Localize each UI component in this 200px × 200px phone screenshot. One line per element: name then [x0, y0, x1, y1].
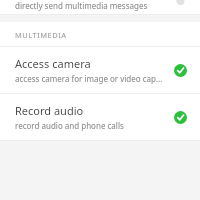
button[interactable]: directly send multimedia messages — [0, 0, 200, 11]
staticText: record audio and phone calls — [15, 120, 124, 131]
button[interactable]: Send multimedia messages denied — [168, 0, 192, 8]
button[interactable]: Record audio — [0, 94, 200, 140]
button[interactable]: Access camera — [0, 47, 200, 93]
staticText: Access camera — [15, 56, 91, 71]
staticText: Record audio — [15, 103, 84, 118]
button[interactable]: Access camera granted — [168, 58, 192, 82]
staticText: directly send multimedia messages — [15, 0, 148, 11]
staticText: access camera for image or video capture — [15, 73, 164, 84]
staticText: MULTIMEDIA — [15, 30, 67, 40]
button[interactable]: Record audio granted — [168, 105, 192, 129]
